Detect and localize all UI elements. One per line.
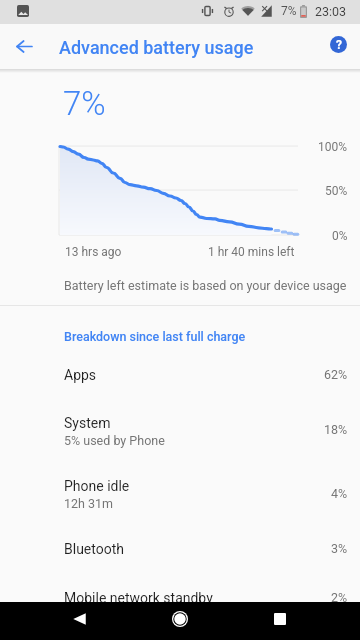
staticText: 50%	[325, 184, 348, 198]
staticText: Battery left estimate is based on your d…	[64, 278, 347, 293]
staticText: Breakdown since last full charge	[64, 329, 246, 344]
staticText: 18%	[324, 422, 348, 437]
staticText: Advanced battery usage	[59, 37, 254, 58]
button[interactable]: System	[0, 401, 360, 464]
staticText: 12h 31m	[64, 496, 114, 511]
staticText: 100%	[318, 140, 348, 154]
staticText: 1 hr 40 mins left	[208, 245, 295, 259]
button[interactable]: Back	[58, 602, 103, 640]
staticText: 23:03	[315, 4, 347, 19]
button[interactable]: Mobile network standby	[0, 576, 360, 623]
staticText: Phone idle	[64, 478, 130, 494]
button[interactable]: Recent apps	[257, 602, 302, 640]
button[interactable]: Bluetooth	[0, 527, 360, 574]
button[interactable]: Home	[157, 602, 202, 640]
button[interactable]: Phone idle	[0, 464, 360, 527]
staticText: 5% used by Phone	[64, 433, 165, 448]
staticText: Apps	[64, 367, 97, 383]
staticText: ?	[336, 38, 342, 52]
staticText: 4%	[331, 486, 348, 501]
button[interactable]: Apps	[0, 353, 360, 400]
staticText: 13 hrs ago	[65, 245, 122, 259]
staticText: 62%	[324, 367, 348, 382]
button[interactable]: Help	[316, 24, 360, 69]
staticText: 2%	[331, 590, 348, 605]
staticText: Bluetooth	[64, 541, 124, 557]
staticText: System	[64, 415, 111, 431]
staticText: 0%	[332, 229, 348, 243]
staticText: Mobile network standby	[64, 590, 213, 606]
button[interactable]: Navigate up	[2, 24, 48, 69]
staticText: 7%	[281, 4, 297, 18]
staticText: 7%	[63, 84, 106, 123]
staticText: 3%	[331, 541, 348, 556]
